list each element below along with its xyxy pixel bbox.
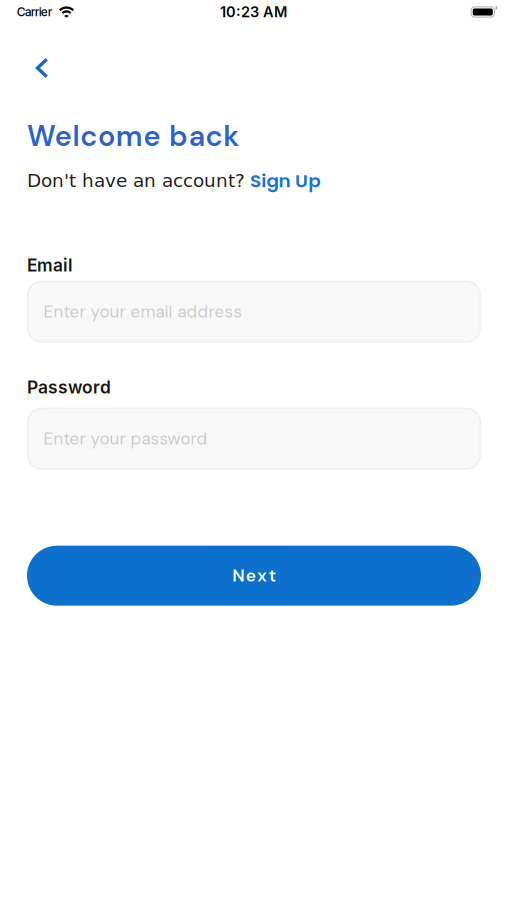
button[interactable]: Sign Up xyxy=(250,170,328,196)
staticText: Enter your password xyxy=(43,428,207,450)
staticText: Next xyxy=(232,564,276,587)
staticText: Password xyxy=(27,377,111,398)
staticText: 10:23 AM xyxy=(220,3,287,21)
button[interactable]: Back xyxy=(0,52,78,83)
staticText: Welcome back xyxy=(27,117,239,155)
button[interactable]: Next xyxy=(27,546,481,606)
staticText: Email xyxy=(27,255,73,276)
button[interactable]: Enter your password xyxy=(27,408,481,470)
button[interactable]: Enter your email address xyxy=(27,281,481,343)
staticText: Carrier xyxy=(17,5,52,19)
staticText: Don't have an account? xyxy=(27,170,245,191)
staticText: Enter your email address xyxy=(43,301,242,323)
staticText: Sign Up xyxy=(250,168,320,194)
